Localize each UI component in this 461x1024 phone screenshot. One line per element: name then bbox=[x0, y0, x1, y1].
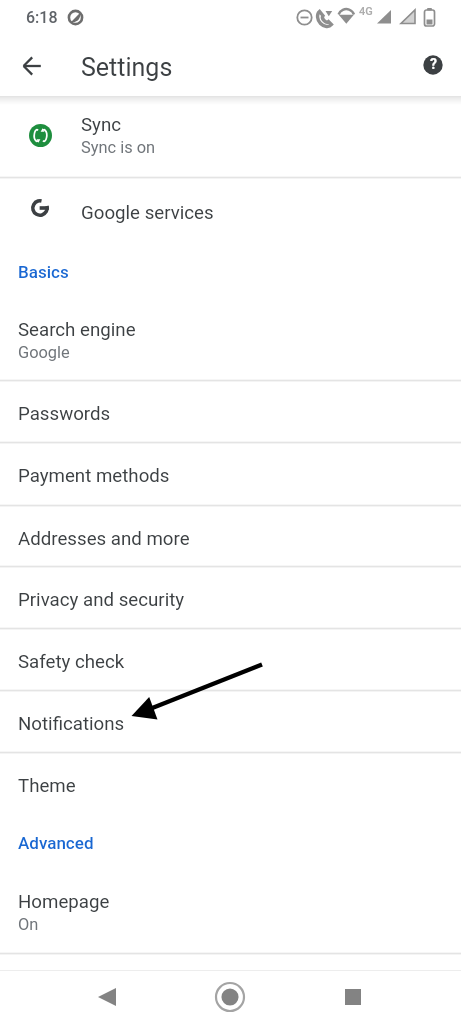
button[interactable]: Safety check bbox=[0, 629, 461, 690]
staticText: Basics bbox=[18, 262, 69, 282]
button[interactable]: Payment methods bbox=[0, 443, 461, 504]
staticText: Sync bbox=[81, 114, 122, 136]
staticText: Sync is on bbox=[81, 138, 156, 157]
button[interactable]: Google services bbox=[0, 178, 461, 244]
button[interactable]: Help and feedback bbox=[414, 46, 452, 84]
button[interactable]: Addresses and more bbox=[0, 506, 461, 567]
staticText: 4G bbox=[359, 5, 373, 18]
staticText: ? bbox=[430, 56, 437, 72]
staticText: 6:18 bbox=[26, 8, 58, 27]
staticText: Notifications bbox=[18, 713, 125, 735]
staticText: Addresses and more bbox=[18, 528, 190, 550]
staticText: Passwords bbox=[18, 403, 111, 425]
staticText: Settings bbox=[81, 53, 173, 82]
button[interactable]: Theme bbox=[0, 753, 461, 814]
button[interactable]: Privacy and security bbox=[0, 567, 461, 628]
button[interactable]: Recent apps bbox=[331, 975, 375, 1019]
staticText: On bbox=[18, 915, 39, 934]
button[interactable]: Navigate up bbox=[13, 47, 51, 85]
button[interactable]: Sync bbox=[0, 98, 461, 177]
button[interactable]: Back bbox=[85, 975, 129, 1019]
staticText: Google bbox=[18, 343, 70, 362]
staticText: Payment methods bbox=[18, 465, 170, 487]
staticText: Google services bbox=[81, 202, 214, 224]
staticText: Advanced bbox=[18, 833, 94, 853]
button[interactable]: Passwords bbox=[0, 381, 461, 442]
button[interactable]: Notifications bbox=[0, 691, 461, 752]
button[interactable]: Homepage bbox=[0, 873, 461, 952]
staticText: Safety check bbox=[18, 651, 125, 673]
staticText: Homepage bbox=[18, 891, 110, 913]
staticText: Privacy and security bbox=[18, 589, 185, 611]
staticText: Search engine bbox=[18, 319, 136, 341]
button[interactable]: Home bbox=[208, 975, 252, 1019]
staticText: Theme bbox=[18, 775, 76, 797]
button[interactable]: Search engine bbox=[0, 301, 461, 380]
